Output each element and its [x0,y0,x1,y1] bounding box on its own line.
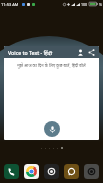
button[interactable]: Account [75,47,86,58]
staticText: Voice to Text - हिंदी [8,49,53,56]
button[interactable]: Chrome [24,164,39,179]
button[interactable]: Photos [84,164,99,179]
button[interactable]: Messages [64,164,79,179]
staticText: % [99,2,102,7]
button[interactable]: Phone [4,164,19,179]
staticText: मुझे आज का दिन के लिए कुछ बातें, हिंदी ब… [8,63,95,69]
button[interactable]: Record voice [44,121,60,137]
button[interactable]: Share [86,47,97,58]
staticText: 100 [81,2,88,7]
staticText: 11:53 AM [1,2,19,7]
button[interactable]: Camera [44,164,59,179]
